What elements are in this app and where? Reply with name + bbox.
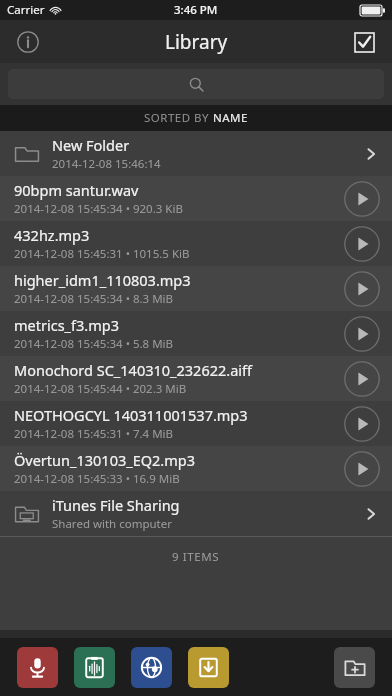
button[interactable]: 432hz.mp3 (0, 221, 392, 266)
staticText: NEOTHOGCYL 140311001537.mp3 (14, 405, 248, 425)
button[interactable]: iTunes File Sharing (0, 491, 392, 536)
button[interactable]: Övertun_130103_EQ2.mp3 (0, 446, 392, 491)
button[interactable]: 90bpm santur.wav (0, 176, 392, 221)
button[interactable]: Play (342, 449, 382, 489)
button[interactable]: Play (342, 224, 382, 264)
staticText: 2014-12-08 15:45:31 • 1015.5 KiB (14, 246, 190, 262)
staticText: NAME (213, 110, 248, 126)
button[interactable]: Play (342, 179, 382, 219)
staticText: SORTED BY (144, 110, 213, 126)
button[interactable]: metrics_f3.mp3 (0, 311, 392, 356)
button[interactable]: New Folder (334, 647, 375, 688)
button[interactable]: Browse (131, 647, 172, 688)
button[interactable]: Play (342, 314, 382, 354)
staticText: metrics_f3.mp3 (14, 315, 119, 335)
staticText: Shared with computer (52, 516, 172, 532)
button[interactable]: New Folder (0, 131, 392, 176)
button[interactable]: Play (342, 359, 382, 399)
staticText: 2014-12-08 15:46:14 (52, 156, 161, 172)
staticText: higher_idm1_110803.mp3 (14, 270, 191, 290)
staticText: 2014-12-08 15:45:44 • 202.3 MiB (14, 381, 187, 397)
button[interactable]: Monochord SC_140310_232622.aiff (0, 356, 392, 401)
staticText: Övertun_130103_EQ2.mp3 (14, 450, 195, 470)
staticText: Monochord SC_140310_232622.aiff (14, 360, 253, 380)
button[interactable]: Info (10, 24, 46, 60)
staticText: 2014-12-08 15:45:33 • 16.9 MiB (14, 471, 180, 487)
button[interactable]: higher_idm1_110803.mp3 (0, 266, 392, 311)
button[interactable]: Search (8, 69, 384, 99)
staticText: iTunes File Sharing (52, 495, 180, 515)
staticText: 2014-12-08 15:45:34 • 8.3 MiB (14, 291, 174, 307)
button[interactable]: Select (346, 24, 382, 60)
staticText: 2014-12-08 15:45:34 • 5.8 MiB (14, 336, 174, 352)
button[interactable]: Waveform (74, 647, 115, 688)
staticText: 90bpm santur.wav (14, 180, 139, 200)
staticText: 9 ITEMS (172, 549, 220, 565)
staticText: 432hz.mp3 (14, 225, 90, 245)
staticText: New Folder (52, 135, 130, 155)
button[interactable]: Record (17, 647, 58, 688)
button[interactable]: NEOTHOGCYL 140311001537.mp3 (0, 401, 392, 446)
button[interactable]: Play (342, 404, 382, 444)
staticText: Library (165, 29, 228, 55)
staticText: Carrier (7, 2, 45, 18)
staticText: 3:46 PM (174, 2, 218, 18)
staticText: 2014-12-08 15:45:31 • 7.4 MiB (14, 426, 174, 442)
staticText: 2014-12-08 15:45:34 • 920.3 KiB (14, 201, 183, 217)
button[interactable]: Import (188, 647, 229, 688)
button[interactable]: Play (342, 269, 382, 309)
